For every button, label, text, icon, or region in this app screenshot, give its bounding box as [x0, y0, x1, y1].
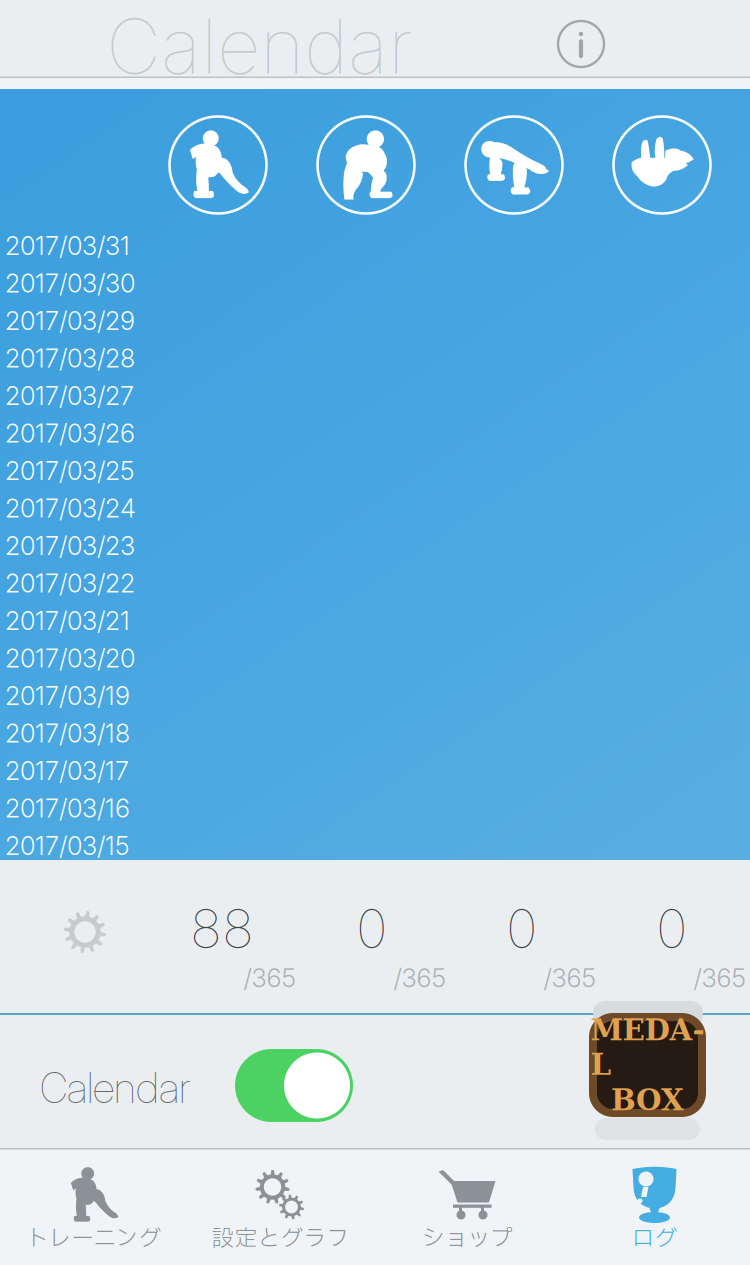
staticText: 2017/03/20 — [5, 643, 135, 674]
staticText: 2017/03/24 — [5, 493, 136, 524]
staticText: トレーニング — [25, 1222, 161, 1256]
button[interactable]: Push ups — [464, 115, 564, 215]
staticText: 2017/03/25 — [5, 455, 134, 486]
staticText: 0 — [506, 896, 538, 961]
staticText: 2017/03/18 — [5, 718, 130, 749]
button[interactable]: Back extensions — [612, 115, 712, 215]
staticText: MEDAL — [590, 1013, 704, 1082]
button[interactable]: Info — [555, 18, 607, 70]
staticText: Calendar — [106, 0, 413, 92]
staticText: /365 — [393, 963, 445, 993]
button[interactable]: Squats — [316, 115, 416, 215]
button[interactable]: Medal Box — [589, 1001, 706, 1141]
button[interactable]: ログ — [561, 1151, 748, 1265]
staticText: /365 — [693, 963, 745, 993]
staticText: 2017/03/27 — [5, 380, 134, 411]
staticText: 設定とグラフ — [211, 1222, 349, 1256]
staticText: 2017/03/29 — [5, 305, 135, 336]
staticText: Calendar — [40, 1063, 190, 1113]
staticText: 2017/03/30 — [5, 268, 135, 299]
staticText: 2017/03/17 — [5, 755, 129, 786]
staticText: ショップ — [422, 1222, 513, 1256]
staticText: BOX — [611, 1083, 684, 1117]
button[interactable]: ショップ — [374, 1151, 561, 1265]
staticText: 2017/03/28 — [5, 343, 135, 374]
staticText: 2017/03/15 — [5, 830, 129, 861]
staticText: 2017/03/16 — [5, 793, 130, 824]
staticText: 2017/03/22 — [5, 568, 135, 599]
staticText: 2017/03/31 — [5, 230, 130, 261]
staticText: ログ — [631, 1222, 677, 1256]
button[interactable]: 設定とグラフ — [187, 1151, 374, 1265]
button[interactable]: トレーニング — [0, 1151, 187, 1265]
staticText: 0 — [356, 896, 388, 961]
staticText: 2017/03/19 — [5, 680, 130, 711]
staticText: /365 — [543, 963, 595, 993]
staticText: 0 — [656, 896, 688, 961]
staticText: 2017/03/26 — [5, 418, 135, 449]
button[interactable]: Settings — [64, 911, 106, 953]
staticText: 2017/03/21 — [5, 605, 130, 636]
staticText: /365 — [243, 963, 295, 993]
button[interactable]: Sit ups — [168, 115, 268, 215]
button[interactable]: Calendar, on — [235, 1049, 353, 1122]
staticText: 88 — [190, 896, 254, 961]
staticText: 2017/03/23 — [5, 530, 135, 561]
